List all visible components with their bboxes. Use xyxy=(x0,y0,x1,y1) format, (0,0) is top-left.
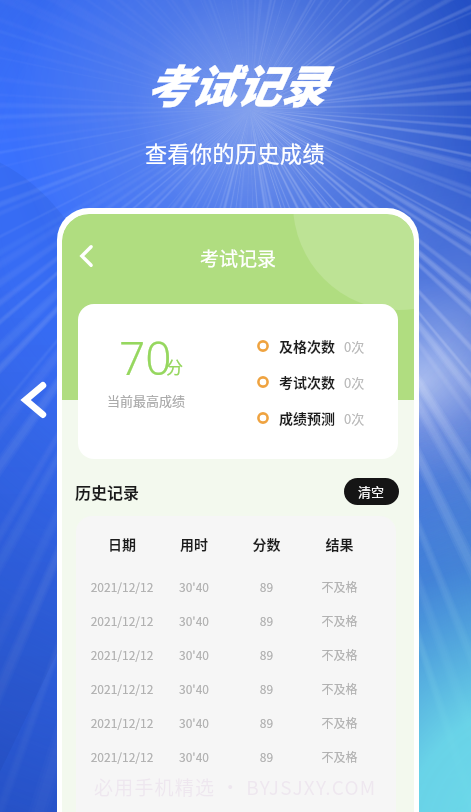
staticText: 不及格 xyxy=(303,714,376,731)
staticText: 89 xyxy=(230,578,303,595)
staticText: 30'40 xyxy=(158,612,230,629)
staticText: 2021/12/12 xyxy=(86,578,158,595)
staticText: 不及格 xyxy=(303,612,376,629)
button[interactable]: 2021/12/12 xyxy=(76,569,396,603)
staticText: 不及格 xyxy=(303,680,376,697)
staticText: 分 xyxy=(166,354,183,379)
button[interactable]: 2021/12/12 xyxy=(76,671,396,705)
staticText: 0次 xyxy=(344,337,365,356)
staticText: 不及格 xyxy=(303,646,376,663)
staticText: 不及格 xyxy=(303,578,376,595)
staticText: 2021/12/12 xyxy=(86,646,158,663)
staticText: 30'40 xyxy=(158,646,230,663)
staticText: 及格次数 xyxy=(279,336,335,356)
staticText: 2021/12/12 xyxy=(86,748,158,765)
staticText: 不及格 xyxy=(303,748,376,765)
staticText: 2021/12/12 xyxy=(86,612,158,629)
staticText: 89 xyxy=(230,680,303,697)
staticText: 必用手机精选 · BYJSJXY.COM xyxy=(94,773,377,801)
staticText: 89 xyxy=(230,612,303,629)
staticText: 考试次数 xyxy=(279,372,335,392)
staticText: 89 xyxy=(230,714,303,731)
staticText: 2021/12/12 xyxy=(86,680,158,697)
staticText: 30'40 xyxy=(158,714,230,731)
staticText: 用时 xyxy=(158,534,230,554)
staticText: 成绩预测 xyxy=(279,408,335,428)
button[interactable]: 2021/12/12 xyxy=(76,705,396,739)
staticText: 查看你的历史成绩 xyxy=(145,136,326,168)
staticText: 0次 xyxy=(344,409,365,428)
button[interactable]: 2021/12/12 xyxy=(76,637,396,671)
staticText: 89 xyxy=(230,646,303,663)
button[interactable]: 2021/12/12 xyxy=(76,739,396,773)
staticText: 89 xyxy=(230,748,303,765)
staticText: 结果 xyxy=(303,534,376,554)
button[interactable]: 清空 xyxy=(344,478,399,505)
button[interactable]: Back xyxy=(12,378,56,422)
staticText: 2021/12/12 xyxy=(86,714,158,731)
staticText: 0次 xyxy=(344,373,365,392)
staticText: 历史记录 xyxy=(75,480,140,503)
staticText: 考试记录 xyxy=(145,51,326,116)
staticText: 30'40 xyxy=(158,680,230,697)
staticText: 30'40 xyxy=(158,748,230,765)
staticText: 考试记录 xyxy=(62,244,414,272)
button[interactable]: 2021/12/12 xyxy=(76,603,396,637)
staticText: 当前最高成绩 xyxy=(107,391,186,410)
staticText: 30'40 xyxy=(158,578,230,595)
staticText: 70 xyxy=(119,326,172,389)
staticText: 清空 xyxy=(358,482,385,501)
staticText: 分数 xyxy=(230,534,303,554)
staticText: 日期 xyxy=(86,534,158,554)
button[interactable]: Back xyxy=(70,240,102,272)
